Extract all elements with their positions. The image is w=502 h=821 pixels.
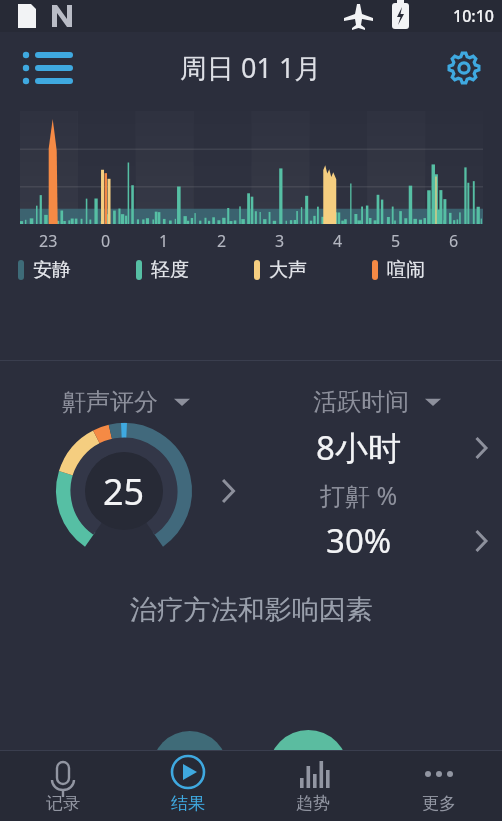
staticText: 记录	[46, 793, 80, 814]
staticText: 0	[101, 230, 111, 252]
button[interactable]: 30%	[251, 518, 502, 563]
staticText: 活跃时间	[313, 387, 409, 417]
button[interactable]: Menu	[16, 42, 68, 94]
staticText: 更多	[422, 793, 456, 814]
staticText: 大声	[269, 258, 307, 282]
button[interactable]: 记录	[0, 751, 125, 821]
button[interactable]: 8小时	[251, 425, 502, 470]
button[interactable]: 活跃时间	[251, 387, 502, 417]
staticText: 2	[217, 230, 227, 252]
staticText: 趋势	[296, 793, 330, 814]
staticText: 6	[449, 230, 459, 252]
button[interactable]: 鼾声评分详情	[210, 473, 246, 509]
staticText: 打鼾 %	[320, 478, 398, 512]
button[interactable]: 结果	[125, 751, 250, 821]
staticText: 安静	[33, 258, 71, 282]
button[interactable]: 鼾声评分	[0, 387, 251, 417]
staticText: 结果	[171, 793, 205, 814]
staticText: 25	[103, 467, 145, 516]
staticText: 23	[39, 230, 58, 252]
button[interactable]: Settings	[440, 44, 488, 92]
button[interactable]: 趋势	[250, 751, 376, 821]
staticText: 10:10	[453, 5, 494, 27]
button[interactable]: 更多	[376, 751, 502, 821]
staticText: 5	[391, 230, 401, 252]
button[interactable]: 治疗方法和影响因素	[130, 593, 373, 627]
staticText: 1	[159, 230, 169, 252]
button[interactable]: 25	[56, 423, 192, 559]
staticText: 喧闹	[387, 258, 425, 282]
staticText: 轻度	[151, 258, 189, 282]
staticText: 3	[275, 230, 285, 252]
staticText: 4	[333, 230, 343, 252]
staticText: 鼾声评分	[62, 387, 158, 417]
staticText: 30%	[326, 518, 392, 563]
staticText: 8小时	[316, 425, 401, 470]
staticText: 周日 01 1月	[180, 49, 322, 86]
